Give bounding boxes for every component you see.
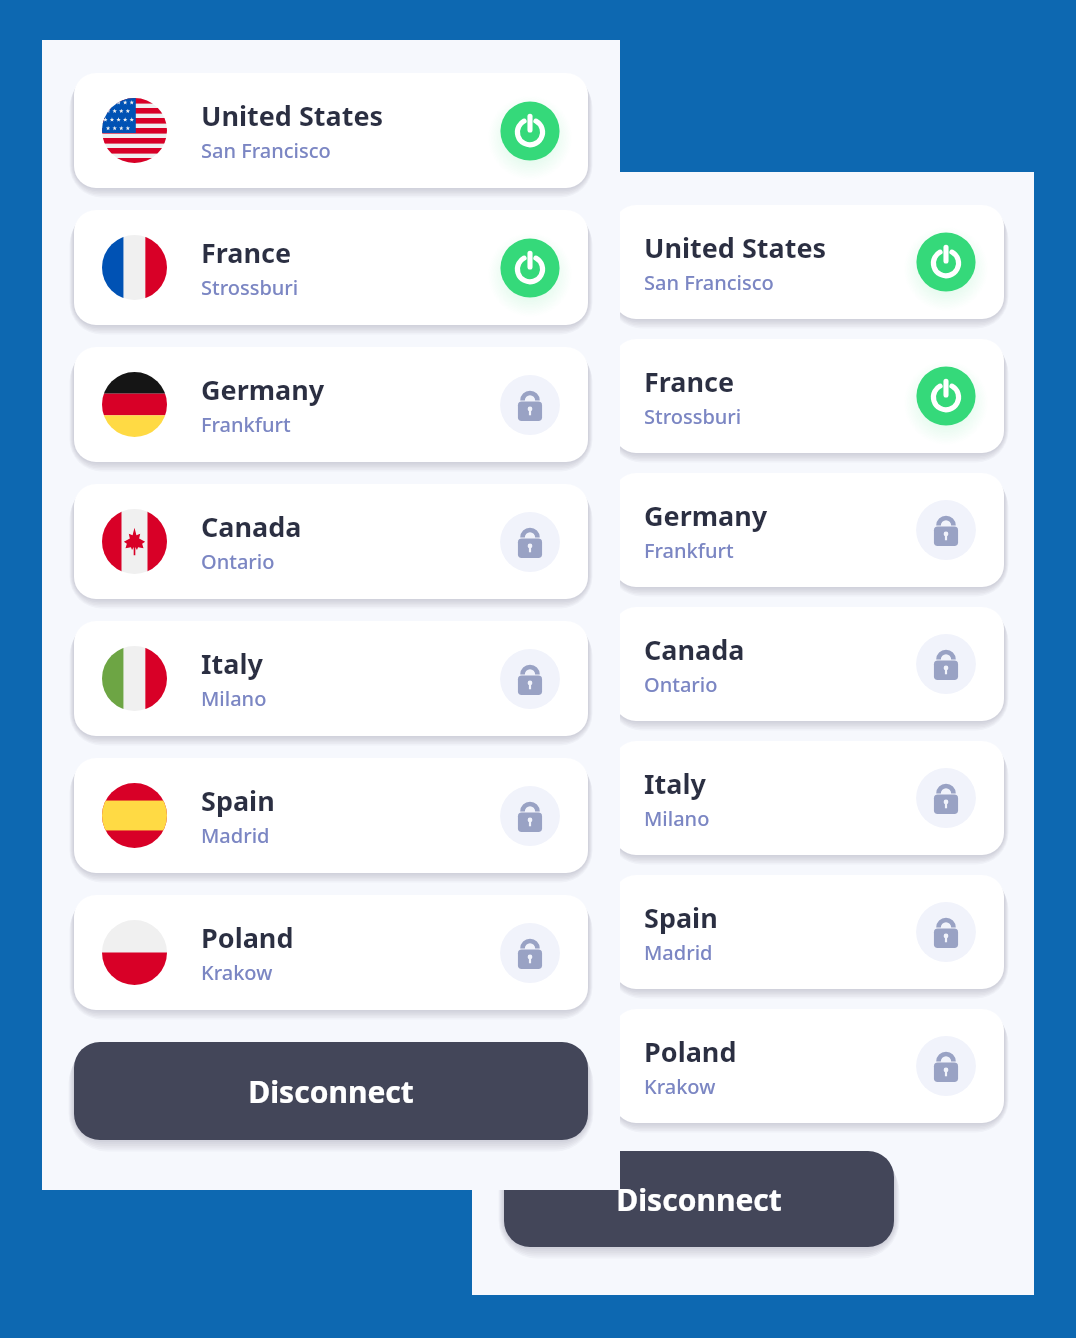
button[interactable]: Locked — premium server: [496, 919, 564, 987]
staticText: Canada: [644, 631, 745, 668]
button[interactable]: Locked — premium server: [496, 782, 564, 850]
staticText: Germany: [644, 497, 768, 534]
staticText: France: [201, 234, 292, 271]
button[interactable]: Italy: [614, 741, 1004, 855]
button[interactable]: Canada: [614, 607, 1004, 721]
button[interactable]: Locked — premium server: [496, 508, 564, 576]
button[interactable]: United States: [74, 73, 588, 188]
staticText: Ontario: [644, 671, 718, 698]
button[interactable]: Locked — premium server: [912, 898, 980, 966]
button[interactable]: Locked — premium server: [912, 764, 980, 832]
staticText: Germany: [201, 371, 325, 408]
button[interactable]: Disconnect from server: [496, 234, 564, 302]
staticText: Frankfurt: [201, 411, 291, 438]
button[interactable]: Spain: [74, 758, 588, 873]
staticText: Krakow: [644, 1073, 716, 1100]
staticText: Madrid: [644, 939, 713, 966]
staticText: United States: [201, 97, 384, 134]
button[interactable]: Disconnect from server: [496, 97, 564, 165]
staticText: Strossburi: [644, 403, 742, 430]
staticText: Milano: [201, 685, 267, 712]
button[interactable]: Poland: [614, 1009, 1004, 1123]
button[interactable]: Italy: [74, 621, 588, 736]
staticText: Spain: [201, 782, 275, 819]
staticText: Krakow: [201, 959, 273, 986]
staticText: San Francisco: [201, 137, 331, 164]
button[interactable]: Canada: [74, 484, 588, 599]
staticText: Frankfurt: [644, 537, 734, 564]
staticText: United States: [644, 229, 827, 266]
staticText: Milano: [644, 805, 710, 832]
button[interactable]: Germany: [74, 347, 588, 462]
staticText: San Francisco: [644, 269, 774, 296]
button[interactable]: Spain: [614, 875, 1004, 989]
button[interactable]: Disconnect from server: [912, 362, 980, 430]
staticText: Poland: [644, 1033, 737, 1070]
button[interactable]: France: [74, 210, 588, 325]
button[interactable]: United States: [614, 205, 1004, 319]
staticText: Madrid: [201, 822, 270, 849]
button[interactable]: Locked — premium server: [912, 630, 980, 698]
button[interactable]: Locked — premium server: [912, 1032, 980, 1100]
button[interactable]: Germany: [614, 473, 1004, 587]
staticText: Italy: [644, 765, 706, 802]
button[interactable]: Disconnect: [74, 1042, 588, 1140]
button[interactable]: Locked — premium server: [912, 496, 980, 564]
staticText: Canada: [201, 508, 302, 545]
staticText: Disconnect: [248, 1071, 414, 1112]
button[interactable]: Locked — premium server: [496, 645, 564, 713]
button[interactable]: Disconnect: [504, 1151, 894, 1247]
button[interactable]: Locked — premium server: [496, 371, 564, 439]
staticText: Italy: [201, 645, 263, 682]
staticText: Strossburi: [201, 274, 299, 301]
staticText: France: [644, 363, 735, 400]
button[interactable]: Disconnect from server: [912, 228, 980, 296]
staticText: Poland: [201, 919, 294, 956]
button[interactable]: France: [614, 339, 1004, 453]
button[interactable]: Poland: [74, 895, 588, 1010]
staticText: Ontario: [201, 548, 275, 575]
staticText: Spain: [644, 899, 718, 936]
staticText: Disconnect: [616, 1179, 782, 1220]
